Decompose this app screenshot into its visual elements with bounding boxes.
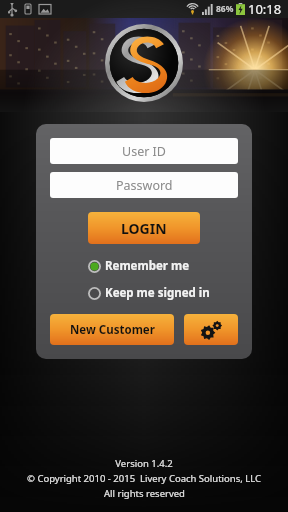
staticText: Remember me bbox=[105, 258, 190, 274]
staticText: Version 1.4.2 bbox=[115, 457, 173, 470]
staticText: LOGIN bbox=[121, 219, 167, 238]
staticText: © Copyright 2010 - 2015 Livery Coach Sol… bbox=[0, 472, 288, 485]
staticText: New Customer bbox=[70, 322, 155, 338]
staticText: Password bbox=[116, 177, 173, 194]
staticText: 86% bbox=[216, 3, 234, 15]
button[interactable]: User ID bbox=[50, 138, 238, 164]
staticText: User ID bbox=[122, 143, 166, 160]
button[interactable]: Remember me bbox=[50, 258, 238, 274]
button[interactable]: New Customer bbox=[50, 314, 174, 345]
button[interactable]: Password bbox=[50, 172, 238, 198]
staticText: Keep me signed in bbox=[105, 285, 210, 301]
button[interactable]: Settings bbox=[184, 314, 238, 345]
button[interactable]: LOGIN bbox=[88, 212, 200, 244]
staticText: All rights reserved bbox=[104, 487, 185, 500]
staticText: 10:18 bbox=[248, 0, 282, 18]
button[interactable]: Keep me signed in bbox=[50, 285, 238, 301]
